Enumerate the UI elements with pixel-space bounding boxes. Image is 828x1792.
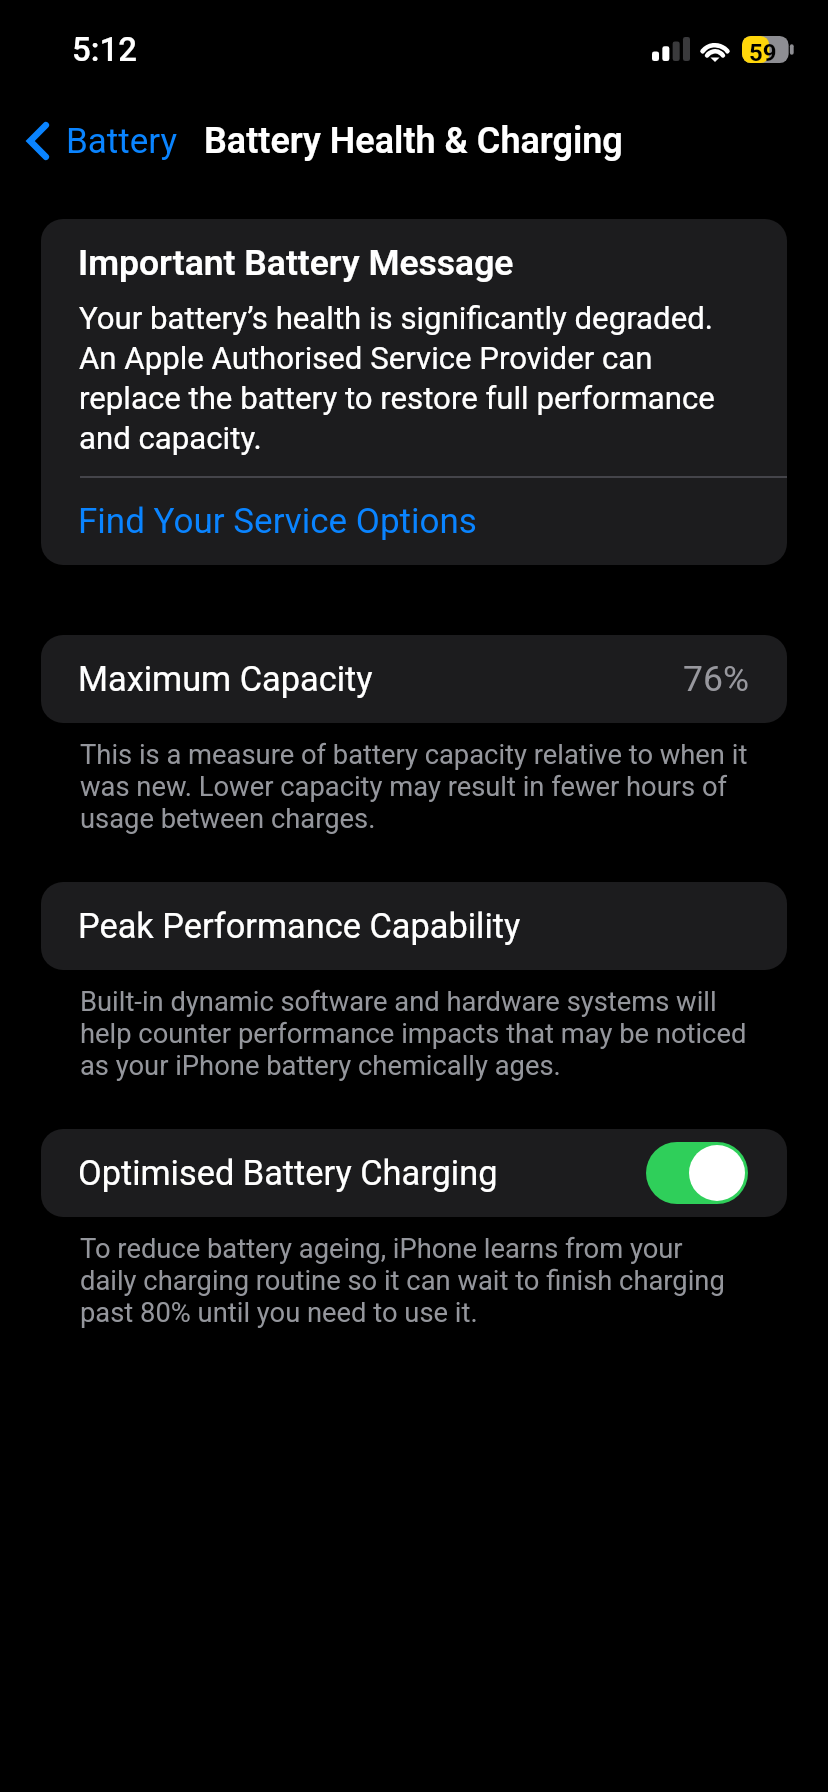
staticText: Built-in dynamic software and hardware s…	[80, 986, 770, 1082]
button[interactable]: Optimised Battery Charging	[41, 1129, 787, 1217]
staticText: Battery	[66, 121, 178, 162]
staticText: 76%	[683, 658, 749, 700]
staticText: To reduce battery ageing, iPhone learns …	[80, 1233, 770, 1329]
staticText: Your battery’s health is significantly d…	[79, 297, 759, 457]
other: Back	[27, 122, 49, 160]
staticText: Important Battery Message	[78, 242, 514, 284]
staticText: 59	[749, 39, 777, 67]
staticText: Optimised Battery Charging	[78, 1153, 498, 1193]
staticText: This is a measure of battery capacity re…	[80, 739, 770, 835]
button[interactable]: Find Your Service Options	[41, 477, 787, 565]
button[interactable]: Peak Performance Capability	[41, 882, 787, 970]
staticText: Battery Health & Charging	[204, 120, 623, 162]
button[interactable]: Maximum Capacity	[41, 635, 787, 723]
button[interactable]: Optimised Battery Charging toggle	[646, 1142, 748, 1204]
staticText: Peak Performance Capability	[78, 906, 521, 946]
button[interactable]: Back	[0, 101, 186, 181]
staticText: 5:12	[72, 30, 137, 69]
staticText: Maximum Capacity	[78, 659, 373, 699]
staticText: Find Your Service Options	[78, 501, 477, 542]
